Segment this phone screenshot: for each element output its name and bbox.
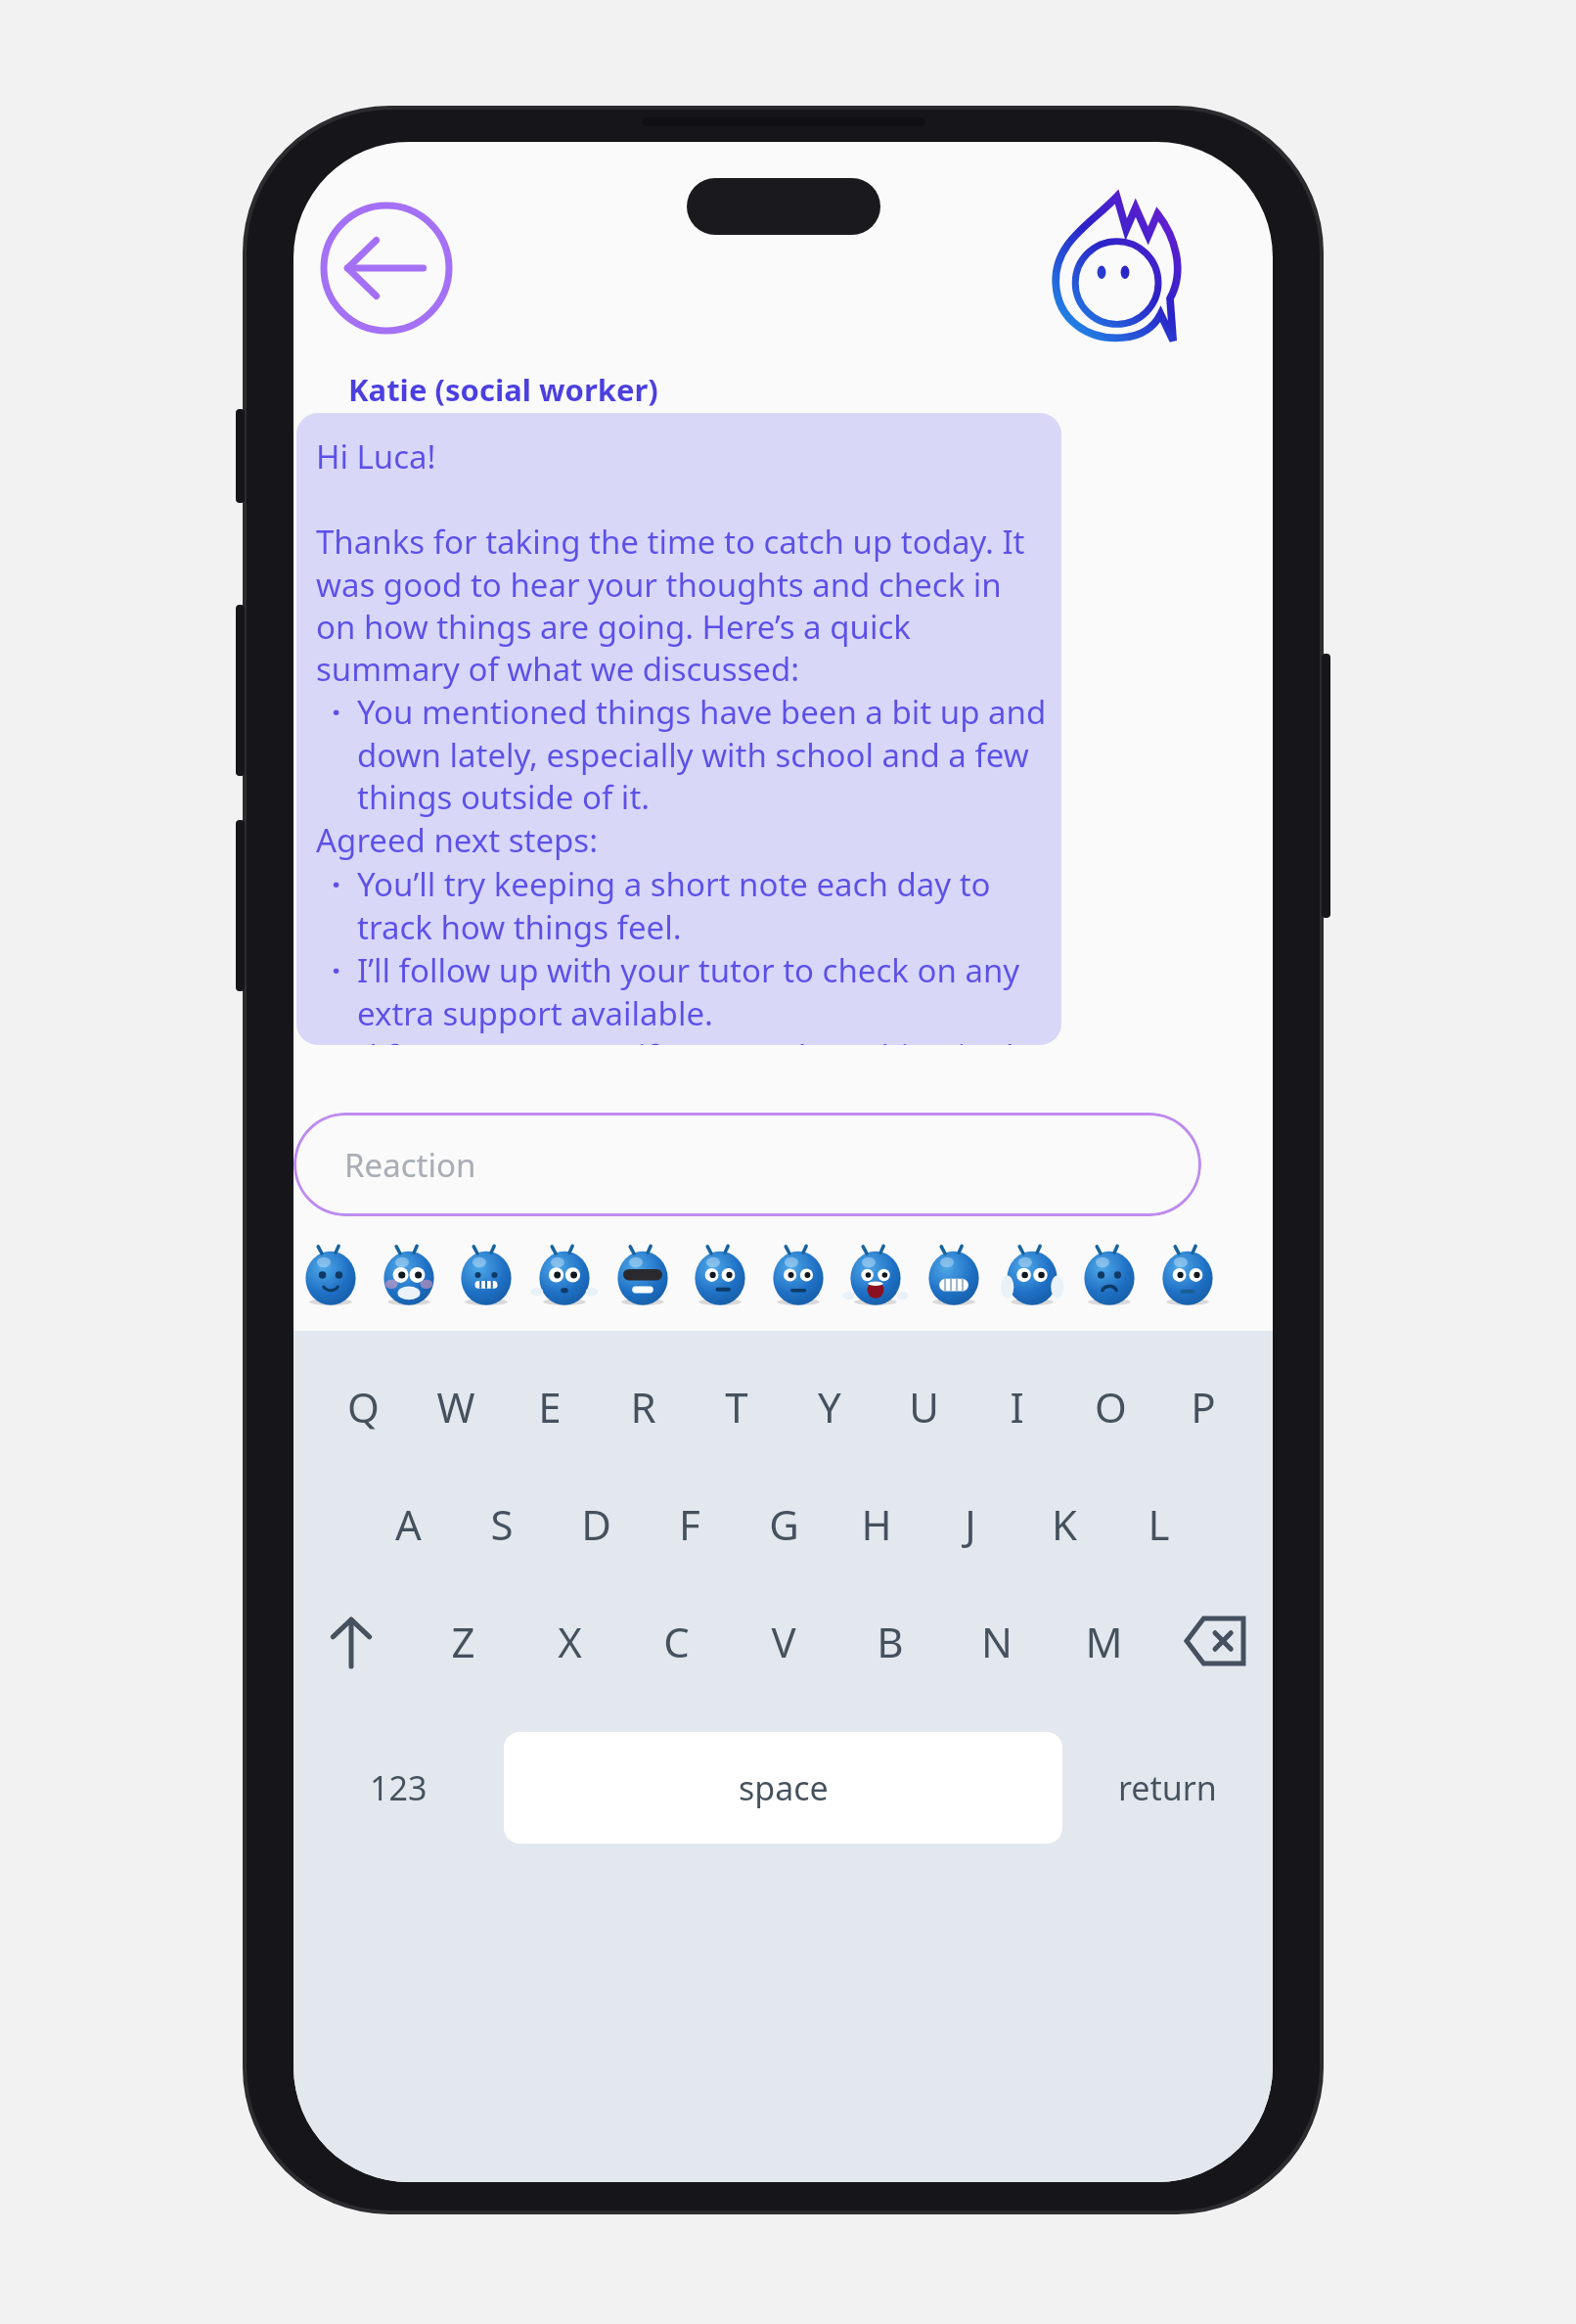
button[interactable]: N (965, 1607, 1029, 1675)
button[interactable]: Reaction emoji 6 (689, 1246, 751, 1308)
staticText: D (581, 1496, 611, 1552)
staticText: G (769, 1496, 799, 1552)
button[interactable]: Reaction emoji 9 (923, 1246, 985, 1308)
button[interactable]: S (470, 1489, 534, 1558)
button[interactable]: E (518, 1372, 582, 1440)
staticText: X (558, 1614, 582, 1669)
button[interactable]: V (751, 1607, 816, 1675)
staticText: You mentioned things have been a bit up … (357, 690, 1048, 818)
button[interactable]: Shift (293, 1607, 409, 1675)
button[interactable]: Reaction emoji 12 (1156, 1246, 1219, 1308)
staticText: P (1191, 1379, 1216, 1435)
staticText: C (663, 1614, 690, 1669)
staticText: M (1085, 1614, 1123, 1669)
staticText: K (1052, 1496, 1077, 1552)
staticText: T (725, 1379, 748, 1435)
staticText: F (679, 1496, 700, 1552)
staticText: 123 (370, 1765, 428, 1810)
staticText: N (981, 1614, 1013, 1669)
staticText: I’ll follow up with your tutor to check … (357, 948, 1048, 1034)
staticText: E (538, 1379, 562, 1435)
staticText: Z (451, 1614, 475, 1669)
staticText: You’ll try keeping a short note each day… (357, 862, 1048, 948)
staticText: space (739, 1765, 829, 1810)
button[interactable]: Q (331, 1372, 395, 1440)
button[interactable]: return (1062, 1730, 1273, 1846)
button[interactable]: W (424, 1372, 488, 1440)
button[interactable]: Reaction emoji 2 (378, 1246, 440, 1308)
staticText: J (965, 1496, 976, 1552)
staticText: R (630, 1379, 656, 1435)
button[interactable]: I (984, 1372, 1049, 1440)
staticText: S (490, 1496, 514, 1552)
button[interactable]: F (657, 1489, 722, 1558)
staticText: V (771, 1614, 796, 1669)
button[interactable]: Z (430, 1607, 495, 1675)
button[interactable]: J (938, 1489, 1003, 1558)
staticText: H (861, 1496, 892, 1552)
staticText: W (436, 1379, 475, 1435)
button[interactable]: A (376, 1489, 440, 1558)
button[interactable]: P (1171, 1372, 1236, 1440)
staticText: A (395, 1496, 422, 1552)
staticText: L (1148, 1496, 1170, 1552)
staticText: I (1010, 1379, 1024, 1435)
button[interactable]: Reaction emoji 10 (1001, 1246, 1063, 1308)
button[interactable]: Backspace (1157, 1607, 1273, 1675)
staticText: Thanks for taking the time to catch up t… (316, 520, 1048, 690)
button[interactable]: H (844, 1489, 909, 1558)
button[interactable]: R (610, 1372, 675, 1440)
button[interactable]: 123 (293, 1730, 504, 1846)
button[interactable]: Reaction emoji 7 (767, 1246, 830, 1308)
staticText: return (1118, 1765, 1217, 1810)
button[interactable]: C (644, 1607, 708, 1675)
staticText: · (332, 948, 341, 992)
staticText: Reaction (344, 1143, 476, 1187)
button[interactable]: Back (315, 197, 458, 340)
button[interactable]: App logo (1045, 189, 1201, 345)
staticText: · (332, 690, 341, 734)
button[interactable]: D (563, 1489, 628, 1558)
button[interactable]: X (537, 1607, 602, 1675)
staticText: B (877, 1614, 904, 1669)
button[interactable]: U (891, 1372, 956, 1440)
button[interactable]: Reaction emoji 5 (611, 1246, 674, 1308)
button[interactable]: Reaction emoji 1 (299, 1246, 362, 1308)
button[interactable]: Reaction (293, 1113, 1201, 1216)
button[interactable]: M (1071, 1607, 1136, 1675)
staticText: Agreed next steps: (316, 818, 599, 862)
button[interactable]: Y (797, 1372, 862, 1440)
button[interactable]: B (858, 1607, 923, 1675)
staticText: Y (818, 1379, 841, 1435)
button[interactable]: Hi Luca! (296, 413, 1061, 1045)
button[interactable]: Reaction emoji 8 (844, 1246, 907, 1308)
staticText: Katie (social worker) (348, 369, 658, 410)
staticText: U (909, 1379, 939, 1435)
button[interactable]: space (504, 1732, 1062, 1844)
button[interactable]: Reaction emoji 4 (533, 1246, 596, 1308)
button[interactable]: L (1126, 1489, 1191, 1558)
button[interactable]: K (1032, 1489, 1097, 1558)
staticText: Q (347, 1379, 380, 1435)
staticText: O (1095, 1379, 1127, 1435)
button[interactable]: G (751, 1489, 816, 1558)
button[interactable]: O (1078, 1372, 1143, 1440)
staticText: Hi Luca! (316, 434, 436, 478)
button[interactable]: Reaction emoji 11 (1078, 1246, 1141, 1308)
button[interactable]: Reaction emoji 3 (455, 1246, 518, 1308)
staticText: · (332, 862, 341, 906)
button[interactable]: T (704, 1372, 769, 1440)
